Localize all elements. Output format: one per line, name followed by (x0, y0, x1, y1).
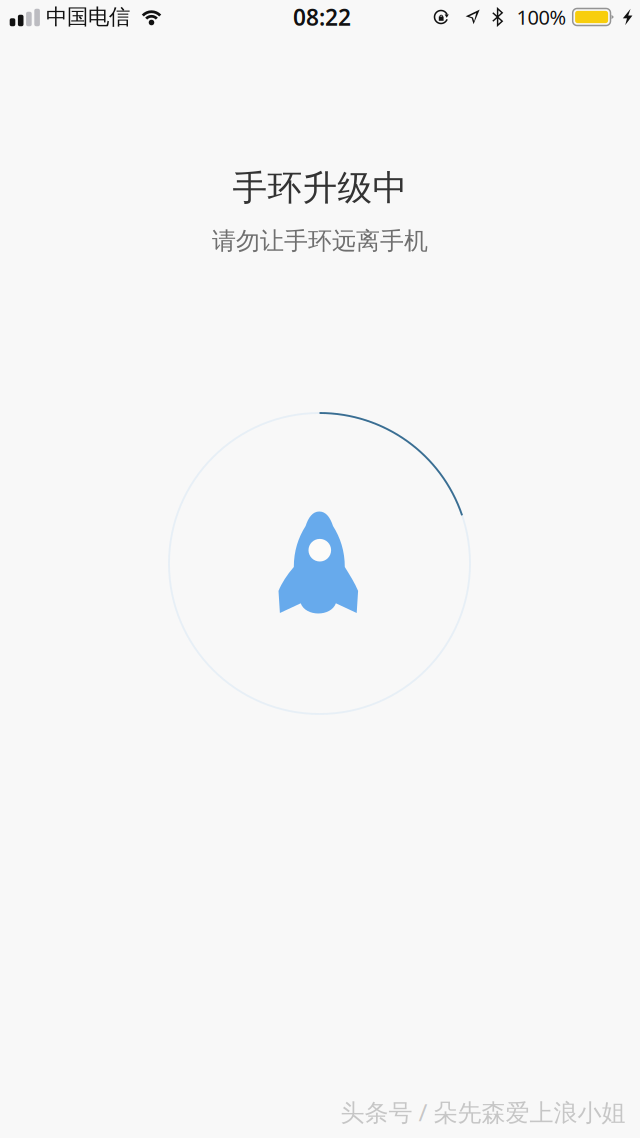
staticText: 手环升级中 (232, 167, 407, 209)
staticText: 请勿让手环远离手机 (212, 226, 428, 256)
staticText: 100% (516, 4, 566, 30)
staticText: 08:22 (293, 2, 351, 32)
staticText: 中国电信 (46, 4, 130, 30)
staticText: 头条号 / 朵先森爱上浪小姐 (340, 1096, 625, 1128)
